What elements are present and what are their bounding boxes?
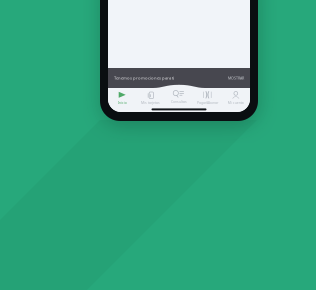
button[interactable]: Inicio — [108, 85, 136, 112]
staticText: Pagar/Abonar — [197, 100, 218, 105]
button[interactable]: Mis tarjetas — [136, 85, 165, 112]
button[interactable]: Mi cuenta — [222, 85, 250, 112]
staticText: Mis tarjetas — [141, 100, 160, 105]
button[interactable]: Pagar/Abonar — [193, 85, 222, 112]
staticText: Consultas — [171, 99, 187, 104]
staticText: MOSTRAR — [228, 75, 244, 80]
button[interactable]: Consultas — [165, 85, 193, 112]
staticText: Inicio — [118, 100, 127, 105]
button[interactable]: Tenemos promociones para ti — [108, 68, 250, 88]
staticText: Mi cuenta — [228, 100, 244, 105]
staticText: Tenemos promociones para ti — [114, 75, 174, 81]
